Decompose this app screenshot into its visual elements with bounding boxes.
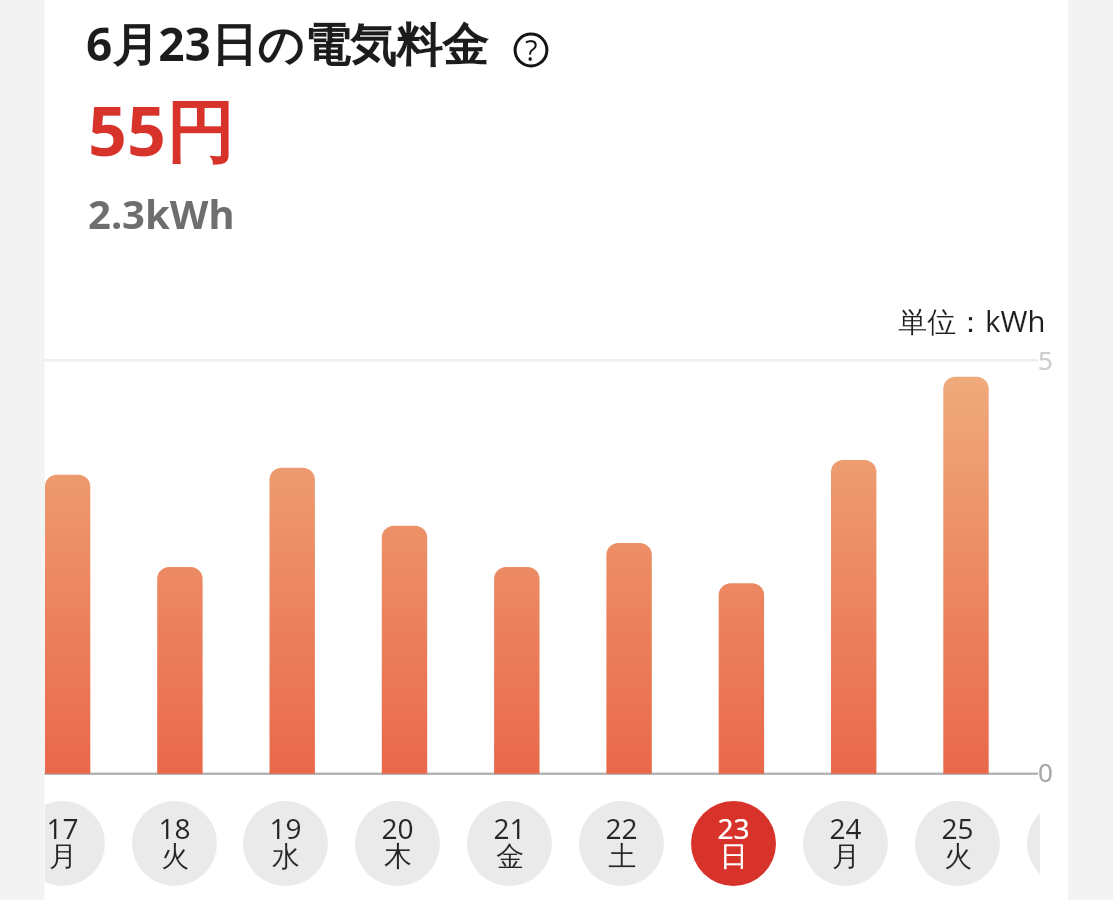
button[interactable]: 21 <box>467 801 552 886</box>
staticText: 18 <box>158 809 191 847</box>
staticText: 0 <box>1038 754 1053 789</box>
button[interactable]: 22 <box>579 801 664 886</box>
staticText: 6月23日の電気料金 <box>86 12 489 75</box>
button[interactable]: 23 <box>691 801 776 886</box>
staticText: 24 <box>829 809 862 847</box>
staticText: 水 <box>272 839 300 874</box>
staticText: 土 <box>608 839 636 874</box>
staticText: ? <box>525 31 538 68</box>
staticText: 19 <box>269 809 302 847</box>
staticText: 2.3kWh <box>88 186 235 240</box>
button[interactable]: 25 <box>915 801 1000 886</box>
staticText: 火 <box>161 839 189 874</box>
button[interactable]: 17 <box>45 801 105 886</box>
staticText: 木 <box>384 839 412 874</box>
staticText: 日 <box>720 839 748 874</box>
button[interactable]: 26 <box>1027 801 1040 886</box>
staticText: 月 <box>832 839 860 874</box>
staticText: 22 <box>605 809 638 847</box>
other: 日別電気使用量グラフ <box>0 0 1113 900</box>
button[interactable]: 24 <box>803 801 888 886</box>
staticText: 金 <box>496 839 524 874</box>
staticText: 23 <box>717 809 750 847</box>
staticText: 55円 <box>88 83 234 176</box>
staticText: 20 <box>381 809 414 847</box>
staticText: 21 <box>493 809 526 847</box>
staticText: 5 <box>1038 342 1053 377</box>
staticText: 17 <box>46 809 79 847</box>
button[interactable]: 20 <box>355 801 440 886</box>
staticText: 25 <box>941 809 974 847</box>
staticText: 火 <box>944 839 972 874</box>
staticText: 単位：kWh <box>898 301 1046 341</box>
button[interactable]: 19 <box>243 801 328 886</box>
button[interactable]: ヘルプ <box>512 31 550 69</box>
staticText: 月 <box>49 839 77 874</box>
button[interactable]: 18 <box>132 801 217 886</box>
